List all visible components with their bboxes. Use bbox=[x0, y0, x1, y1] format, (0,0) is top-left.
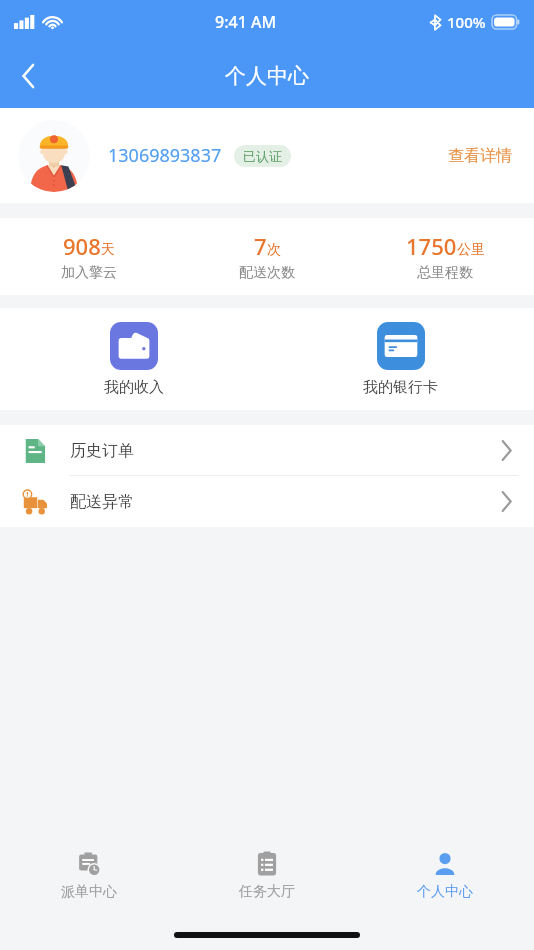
staticText: 任务大厅 bbox=[239, 883, 295, 901]
staticText: 9:41 AM bbox=[215, 11, 277, 33]
staticText: 查看详情 bbox=[448, 146, 512, 166]
button[interactable]: 派单中心 bbox=[0, 835, 178, 915]
button[interactable]: 1750 bbox=[356, 231, 534, 282]
staticText: 配送次数 bbox=[239, 264, 295, 282]
button[interactable]: 历史订单 bbox=[0, 425, 534, 476]
staticText: 天 bbox=[101, 241, 115, 259]
button[interactable]: Back bbox=[4, 52, 52, 100]
staticText: 历史订单 bbox=[70, 441, 134, 461]
staticText: 我的银行卡 bbox=[363, 378, 438, 397]
button[interactable]: 个人中心 bbox=[356, 835, 534, 915]
staticText: 7 bbox=[254, 231, 267, 261]
staticText: 1750 bbox=[406, 231, 457, 261]
staticText: 已认证 bbox=[243, 148, 282, 164]
staticText: 加入擎云 bbox=[61, 264, 117, 282]
staticText: 总里程数 bbox=[417, 264, 473, 282]
staticText: 公里 bbox=[457, 241, 485, 259]
staticText: 次 bbox=[267, 241, 281, 259]
button[interactable]: 配送异常 bbox=[0, 476, 534, 527]
staticText: 个人中心 bbox=[225, 63, 309, 89]
staticText: 个人中心 bbox=[417, 883, 473, 901]
button[interactable]: 任务大厅 bbox=[178, 835, 356, 915]
staticText: 13069893837 bbox=[108, 143, 222, 168]
staticText: 100% bbox=[447, 12, 486, 32]
button[interactable]: 13069893837 bbox=[0, 108, 534, 203]
staticText: 配送异常 bbox=[70, 492, 134, 512]
staticText: 派单中心 bbox=[61, 883, 117, 901]
staticText: 908 bbox=[63, 231, 101, 261]
button[interactable]: 7 bbox=[178, 231, 356, 282]
button[interactable]: 我的收入 bbox=[0, 322, 267, 397]
button[interactable]: 我的银行卡 bbox=[267, 322, 534, 397]
button[interactable]: 查看详情 bbox=[444, 142, 516, 170]
staticText: 我的收入 bbox=[104, 378, 164, 397]
button[interactable]: 908 bbox=[0, 231, 178, 282]
